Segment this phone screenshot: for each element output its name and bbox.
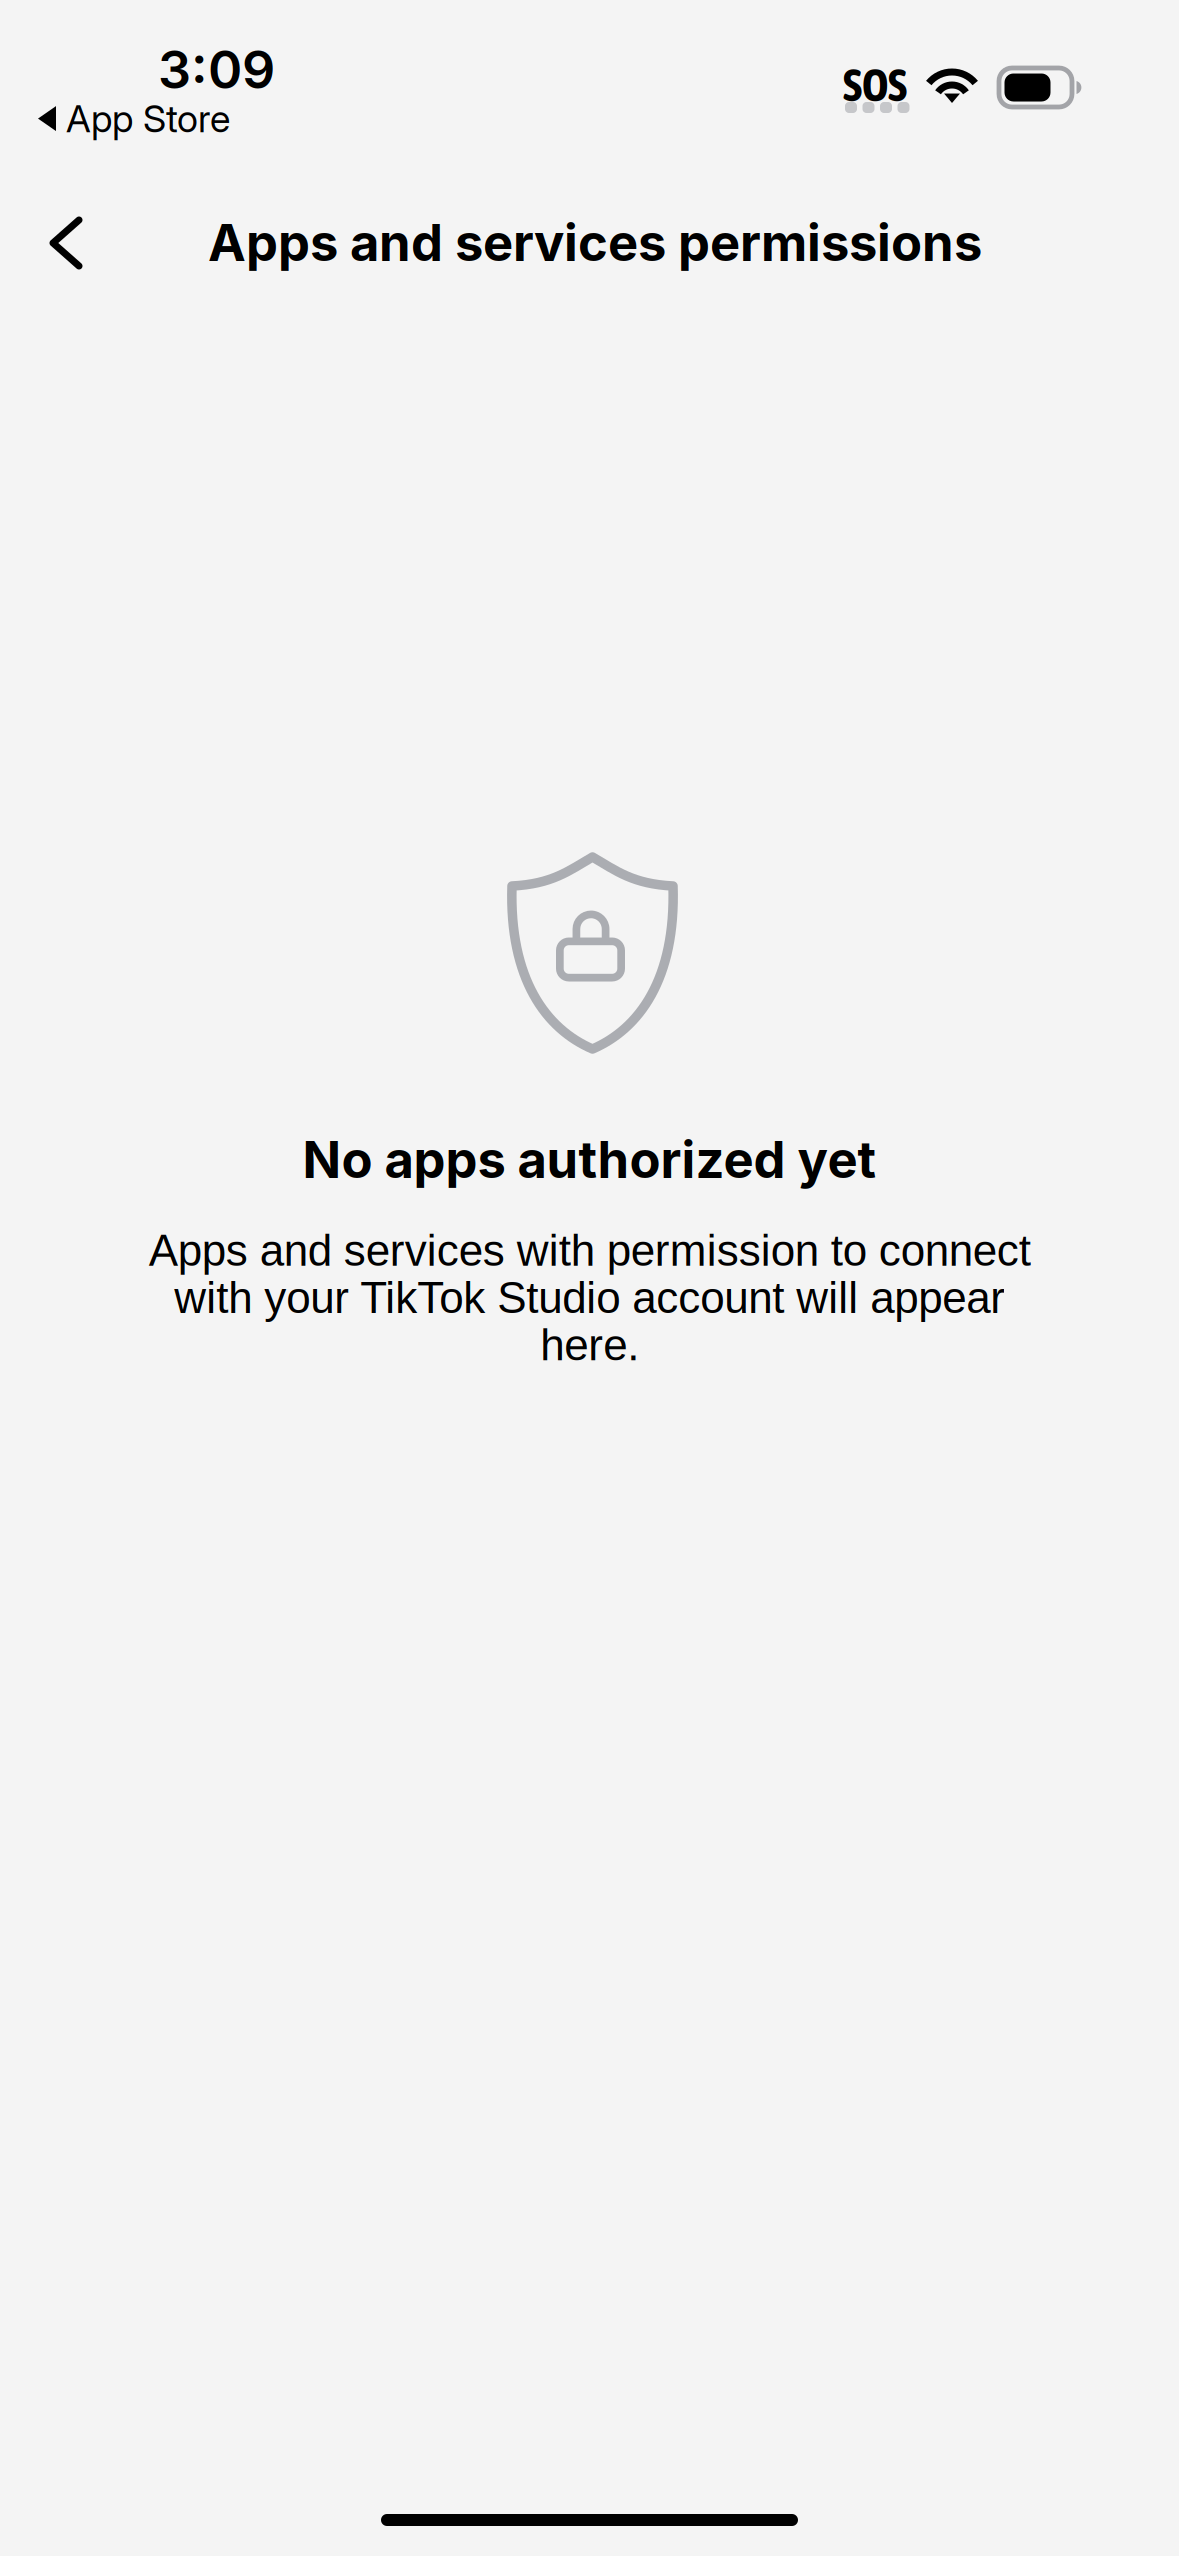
staticText: 3:09 (158, 38, 275, 101)
button[interactable]: Back (21, 198, 111, 288)
staticText: App Store (66, 96, 230, 141)
button[interactable]: App Store (38, 96, 230, 141)
staticText: Apps and services with permission to con… (148, 1226, 1030, 1369)
staticText: No apps authorized yet (302, 1129, 876, 1190)
staticText: Apps and services permissions (208, 212, 982, 273)
staticText: SOS (843, 59, 907, 111)
